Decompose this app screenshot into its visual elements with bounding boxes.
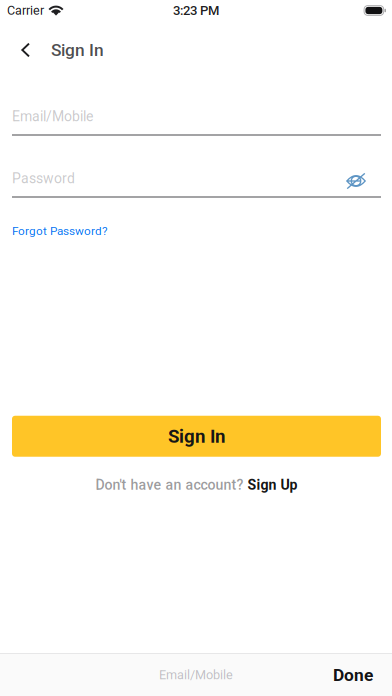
button[interactable]: Done bbox=[317, 654, 392, 696]
staticText: Sign In bbox=[168, 425, 225, 447]
button[interactable]: Don't have an account? bbox=[95, 457, 297, 497]
staticText: 3:23 PM bbox=[173, 3, 219, 18]
staticText: Don't have an account? bbox=[95, 477, 243, 493]
staticText: Done bbox=[333, 665, 373, 685]
staticText: Forgot Password? bbox=[12, 224, 108, 238]
staticText: Carrier bbox=[7, 3, 44, 18]
staticText: Email/Mobile bbox=[159, 668, 233, 682]
button[interactable]: Show password bbox=[346, 167, 381, 190]
staticText: Password bbox=[12, 170, 75, 187]
button[interactable]: Sign In bbox=[0, 27, 104, 68]
staticText: Sign Up bbox=[247, 477, 297, 493]
staticText: Sign In bbox=[51, 40, 104, 60]
staticText: Email/Mobile bbox=[12, 108, 93, 125]
button[interactable]: Sign In bbox=[12, 416, 381, 457]
button[interactable]: Forgot Password? bbox=[12, 221, 108, 241]
